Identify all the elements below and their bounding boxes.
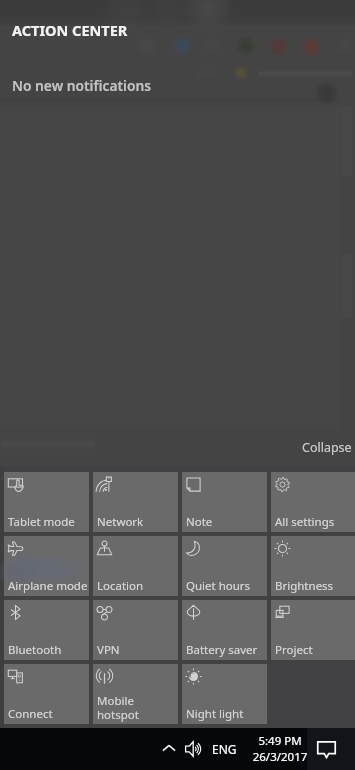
button[interactable]: Volume: [184, 739, 204, 759]
button[interactable]: Night light: [182, 664, 267, 724]
staticText: 5:49 PM: [252, 733, 308, 749]
staticText: Bluetooth: [8, 642, 62, 658]
button[interactable]: Network: [93, 472, 178, 532]
staticText: Mobile hotspot: [97, 693, 178, 722]
button[interactable]: Project: [271, 600, 355, 660]
staticText: Quiet hours: [186, 578, 251, 594]
staticText: All settings: [275, 514, 335, 530]
staticText: Battery saver: [186, 642, 258, 658]
staticText: ACTION CENTER: [12, 20, 128, 40]
button[interactable]: Quiet hours: [182, 536, 267, 596]
staticText: Location: [97, 578, 144, 594]
button[interactable]: Action Center: [317, 740, 336, 759]
staticText: VPN: [97, 642, 120, 658]
button[interactable]: Brightness: [271, 536, 355, 596]
staticText: Brightness: [275, 578, 334, 594]
staticText: ENG: [212, 741, 237, 757]
button[interactable]: Battery saver: [182, 600, 267, 660]
button[interactable]: Collapse: [299, 436, 354, 458]
staticText: Collapse: [302, 439, 352, 456]
staticText: Night light: [186, 706, 244, 722]
button[interactable]: Show hidden icons: [159, 739, 179, 759]
staticText: Tablet mode: [8, 514, 75, 530]
staticText: Network: [97, 514, 144, 530]
button[interactable]: VPN: [93, 600, 178, 660]
button[interactable]: Mobile hotspot: [93, 664, 178, 724]
staticText: Airplane mode: [8, 578, 88, 594]
button[interactable]: Tablet mode: [4, 472, 89, 532]
staticText: 26/3/2017: [252, 749, 308, 765]
button[interactable]: Connect: [4, 664, 89, 724]
button[interactable]: All settings: [271, 472, 355, 532]
staticText: Project: [275, 642, 313, 658]
button[interactable]: Note: [182, 472, 267, 532]
button[interactable]: Location: [93, 536, 178, 596]
button[interactable]: Bluetooth: [4, 600, 89, 660]
staticText: Note: [186, 514, 213, 530]
staticText: Connect: [8, 706, 53, 722]
staticText: No new notifications: [12, 76, 152, 95]
button[interactable]: Airplane mode: [4, 536, 89, 596]
